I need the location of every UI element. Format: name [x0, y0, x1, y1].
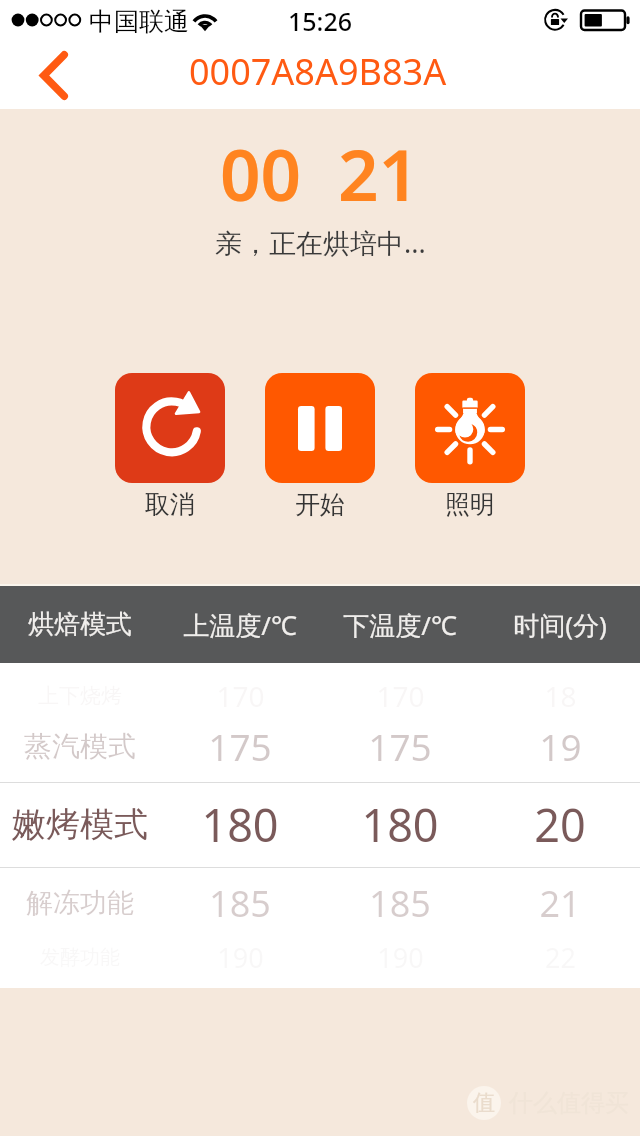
staticText: 15:26: [288, 4, 353, 38]
staticText: 亲，正在烘培中...: [215, 224, 426, 261]
staticText: 烘焙模式: [28, 608, 132, 641]
staticText: 解冻功能: [26, 886, 134, 920]
staticText: 185: [209, 879, 271, 928]
button[interactable]: 开始: [265, 373, 375, 483]
staticText: 时间(分): [513, 607, 607, 643]
staticText: 取消: [145, 489, 195, 520]
button[interactable]: Back: [20, 42, 88, 109]
staticText: 照明: [445, 489, 495, 520]
button[interactable]: 取消: [115, 373, 225, 483]
button[interactable]: 照明: [415, 373, 525, 483]
staticText: 嫩烤模式: [12, 803, 148, 846]
staticText: 下温度/℃: [343, 607, 457, 643]
staticText: 开始: [295, 489, 345, 520]
staticText: 值: [473, 1089, 495, 1117]
staticText: 21: [338, 125, 420, 222]
staticText: 00: [220, 125, 302, 222]
staticText: 175: [368, 721, 432, 771]
staticText: 中国联通: [89, 6, 189, 37]
staticText: 0007A8A9B83A: [189, 47, 447, 96]
staticText: 180: [201, 794, 279, 855]
staticText: 185: [369, 879, 431, 928]
staticText: 20: [534, 794, 586, 855]
staticText: 180: [361, 794, 439, 855]
staticText: 21: [539, 879, 581, 928]
staticText: 蒸汽模式: [24, 729, 136, 764]
staticText: 上温度/℃: [183, 607, 297, 643]
staticText: 175: [208, 721, 272, 771]
staticText: 19: [539, 721, 582, 771]
